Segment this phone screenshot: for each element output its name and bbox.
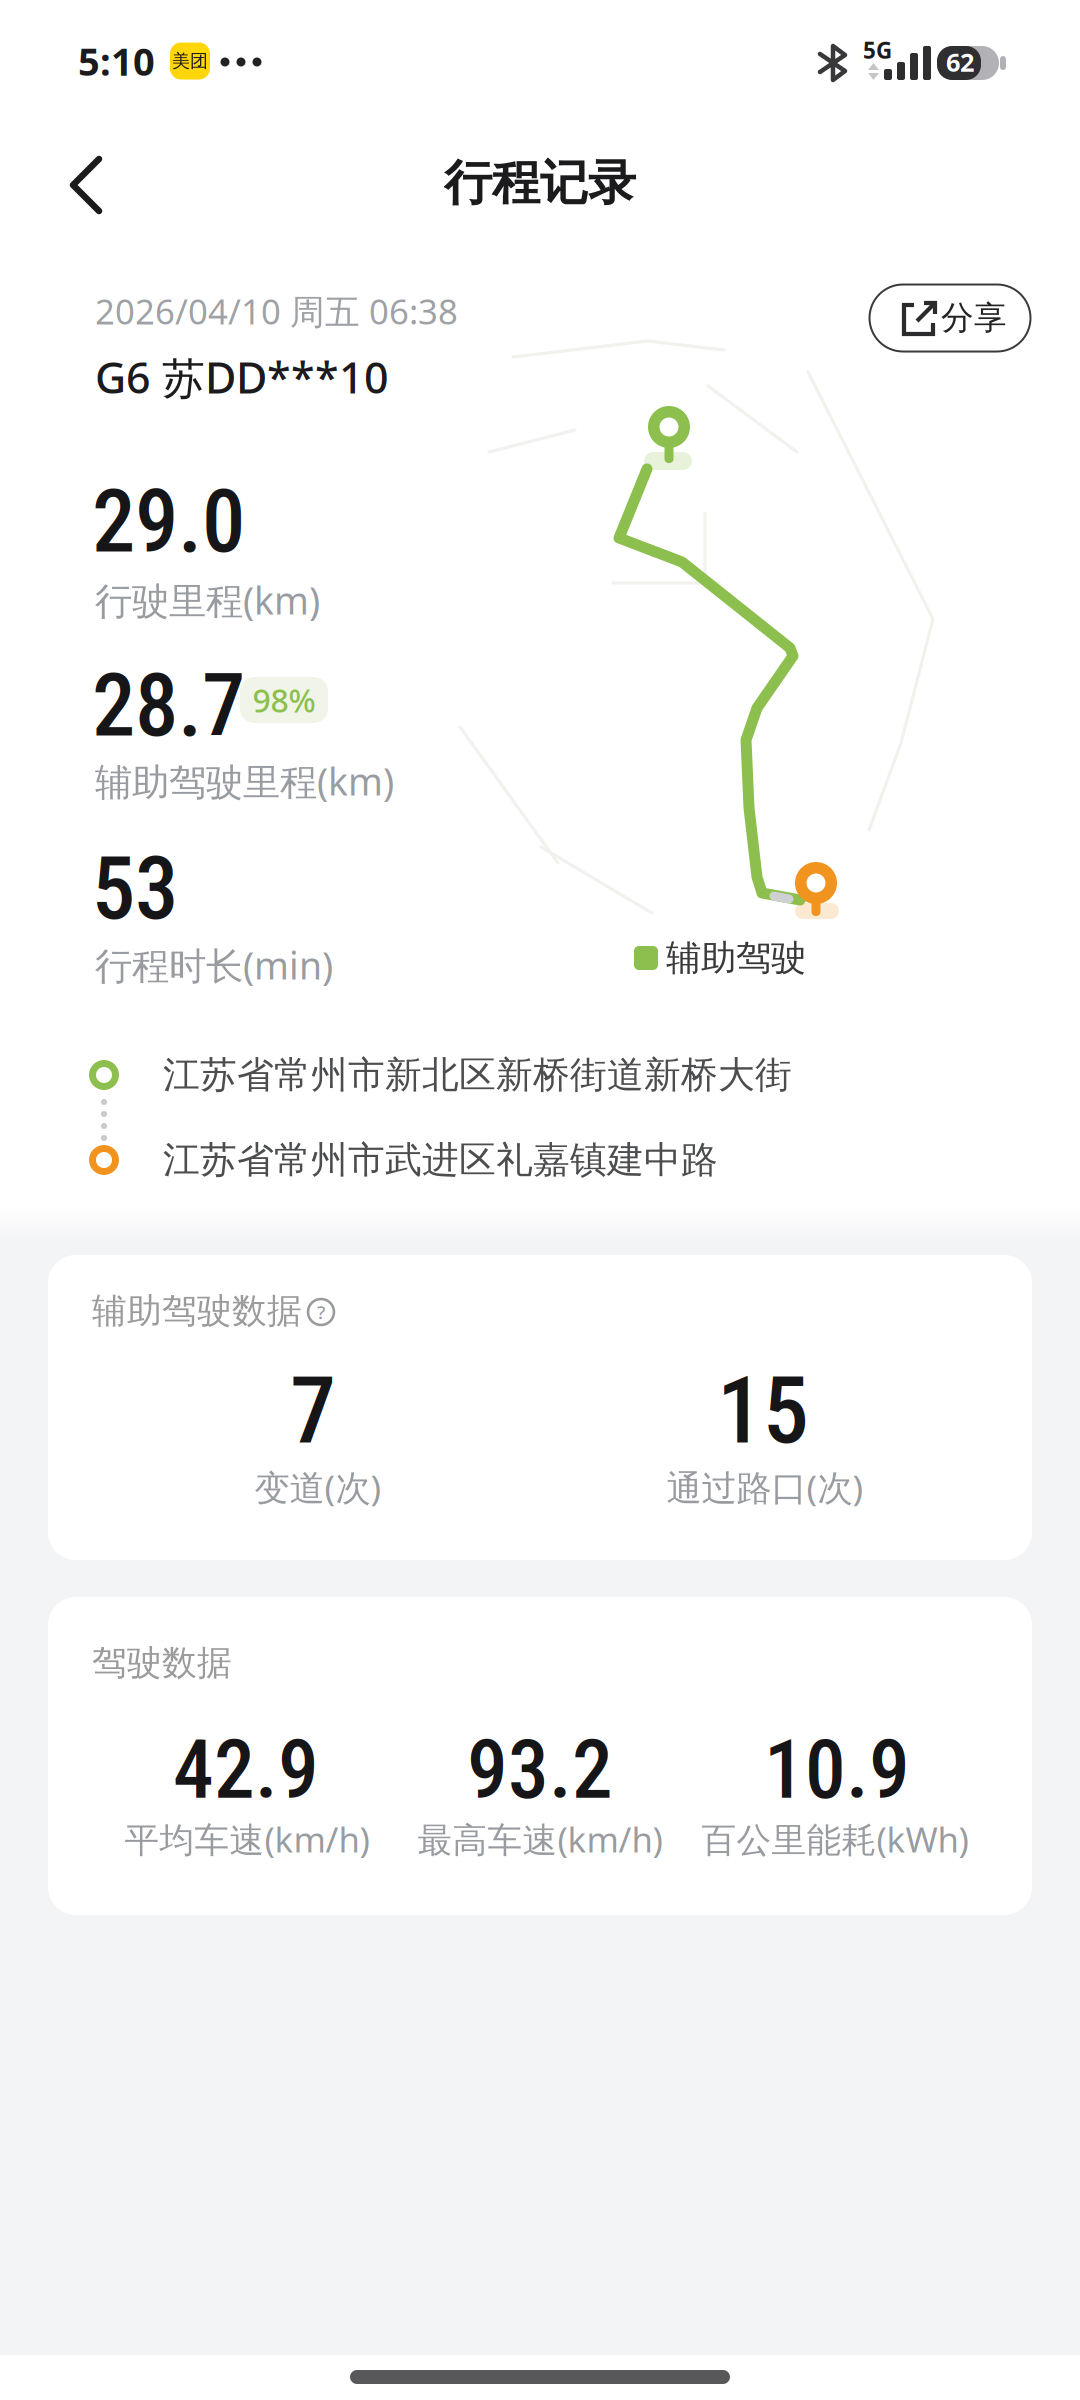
staticText: 行程记录 xyxy=(444,153,636,213)
staticText: 行程时长(min) xyxy=(95,940,333,990)
staticText: 辅助驾驶 xyxy=(666,936,806,980)
staticText: 29.0 xyxy=(92,471,245,573)
staticText: G6 苏DD***10 xyxy=(95,348,389,406)
staticText: 最高车速(km/h) xyxy=(417,1815,662,1863)
staticText: 5G xyxy=(863,35,892,65)
staticText: 28.7 xyxy=(92,655,245,757)
staticText: 15 xyxy=(717,1357,809,1465)
staticText: 平均车速(km/h) xyxy=(124,1815,369,1863)
staticText: 7 xyxy=(290,1357,336,1465)
staticText: 江苏省常州市武进区礼嘉镇建中路 xyxy=(163,1137,718,1183)
staticText: 驾驶数据 xyxy=(92,1641,232,1685)
staticText: 辅助驾驶里程(km) xyxy=(95,756,394,806)
staticText: 辅助驾驶数据 xyxy=(92,1289,302,1333)
staticText: 10.9 xyxy=(764,1722,910,1818)
staticText: 5:10 xyxy=(78,35,155,87)
staticText: 美团 xyxy=(172,50,208,72)
staticText: 变道(次) xyxy=(254,1463,381,1511)
staticText: 江苏省常州市新北区新桥街道新桥大街 xyxy=(163,1052,792,1098)
staticText: 93.2 xyxy=(467,1722,613,1818)
staticText: 百公里能耗(kWh) xyxy=(701,1815,968,1863)
staticText: ? xyxy=(317,1299,325,1325)
staticText: 2026/04/10 周五 06:38 xyxy=(95,287,458,335)
staticText: 98% xyxy=(252,678,315,722)
staticText: 分享 xyxy=(941,297,1007,338)
staticText: 62 xyxy=(946,45,974,79)
staticText: 53 xyxy=(92,838,178,940)
staticText: 行驶里程(km) xyxy=(95,575,320,625)
staticText: 42.9 xyxy=(173,1722,319,1818)
staticText: 通过路口(次) xyxy=(666,1463,863,1511)
